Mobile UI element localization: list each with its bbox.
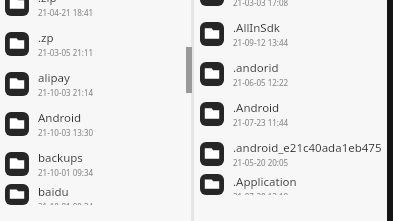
staticText: 21-10-03 21:14 — [38, 87, 94, 98]
staticText: 21-03-05 21:11 — [38, 47, 94, 58]
button[interactable]: Folder — [196, 14, 386, 54]
button[interactable]: Folder — [196, 54, 386, 94]
staticText: 21-10-01 09:34 — [38, 201, 94, 205]
staticText: .android_e21c40ada1eb475bb627 — [233, 140, 385, 156]
staticText: .andorid — [233, 60, 385, 76]
other: Folder — [5, 72, 29, 96]
other: Folder — [200, 22, 224, 46]
other: Folder — [200, 142, 224, 166]
staticText: 21-04-21 18:41 — [38, 7, 94, 18]
button[interactable]: Folder — [196, 0, 386, 14]
staticText: 21-09-12 13:44 — [233, 37, 289, 48]
other: Folder — [200, 62, 224, 86]
staticText: 21-10-01 09:34 — [38, 167, 94, 178]
other: Folder — [5, 152, 29, 176]
other: Folder — [5, 0, 29, 16]
staticText: alipay — [38, 70, 186, 86]
staticText: .AllInSdk — [233, 20, 385, 36]
button[interactable]: Folder — [196, 174, 386, 195]
staticText: .zp — [38, 30, 186, 46]
button[interactable]: Folder — [196, 134, 386, 174]
staticText: 21-07-28 13:18 — [233, 191, 289, 195]
staticText: 21-10-03 13:30 — [38, 127, 94, 138]
button[interactable]: Folder — [0, 104, 190, 144]
button[interactable]: Folder — [0, 184, 190, 205]
staticText: 21-06-05 12:22 — [233, 77, 289, 88]
staticText: Android — [38, 110, 186, 126]
other: Folder — [200, 102, 224, 126]
other: Folder — [5, 112, 29, 136]
staticText: 21-07-23 11:44 — [233, 117, 289, 128]
button[interactable]: Folder — [196, 94, 386, 134]
other: Folder — [5, 184, 29, 205]
staticText: .zip — [38, 0, 186, 6]
staticText: backups — [38, 150, 186, 166]
staticText: baidu — [38, 184, 186, 200]
staticText: 21-03-03 17:08 — [233, 0, 289, 8]
other: Folder — [200, 0, 224, 6]
button[interactable]: Folder — [0, 0, 190, 24]
other: Folder — [200, 174, 224, 195]
button[interactable]: Folder — [0, 144, 190, 184]
staticText: .Application — [233, 174, 385, 190]
other: Folder — [5, 32, 29, 56]
staticText: .Android — [233, 100, 385, 116]
button[interactable]: Folder — [0, 24, 190, 64]
button[interactable]: Folder — [0, 64, 190, 104]
staticText: 21-05-20 20:05 — [233, 157, 289, 168]
